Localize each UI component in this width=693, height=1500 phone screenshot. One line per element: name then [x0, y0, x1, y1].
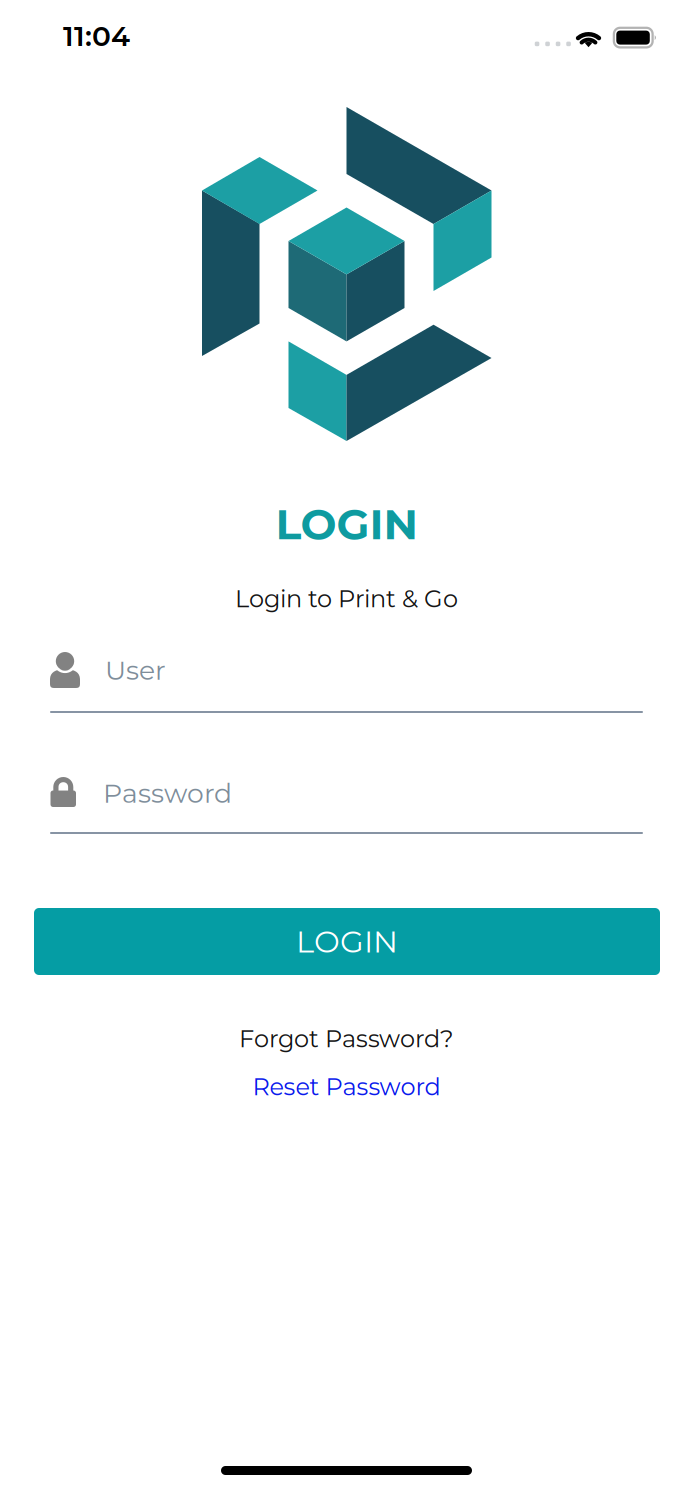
staticText: Login to Print & Go: [235, 584, 458, 613]
staticText: Password: [103, 777, 232, 809]
staticText: User: [105, 654, 166, 686]
button[interactable]: User: [50, 645, 643, 723]
staticText: LOGIN: [296, 923, 398, 960]
staticText: LOGIN: [275, 498, 417, 550]
staticText: Reset Password: [252, 1072, 440, 1101]
button[interactable]: LOGIN: [34, 908, 660, 975]
staticText: 11:04: [63, 19, 130, 53]
button[interactable]: Password: [50, 776, 643, 854]
button[interactable]: Reset Password: [0, 1072, 693, 1101]
staticText: Forgot Password?: [239, 1024, 454, 1053]
